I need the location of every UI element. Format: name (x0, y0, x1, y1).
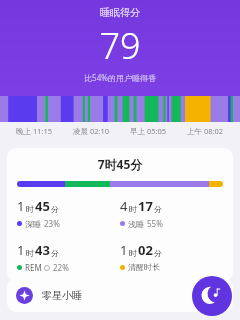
button[interactable]: 零星小睡 (7, 278, 233, 312)
staticText: 43 (35, 241, 50, 259)
staticText: 时 (129, 248, 137, 258)
staticText: 时 (129, 204, 137, 214)
staticText: 0次 (209, 289, 224, 301)
staticText: 上午 08:02 (187, 126, 224, 136)
staticText: 分 (51, 204, 59, 214)
staticText: 1 (17, 197, 25, 215)
staticText: 分 (154, 204, 162, 214)
staticText: 23% (44, 218, 60, 229)
staticText: 分 (51, 248, 59, 258)
staticText: 早上 05:05 (130, 126, 167, 136)
staticText: 45 (35, 197, 50, 215)
staticText: 比54%的用户睡得香 (84, 72, 156, 83)
staticText: 1 (17, 241, 25, 259)
staticText: 时 (26, 204, 34, 214)
staticText: 时 (26, 248, 34, 258)
staticText: 浅睡 (128, 219, 144, 229)
staticText: 79 (99, 21, 141, 70)
staticText: REM (25, 262, 42, 273)
staticText: 晚上 11:15 (16, 126, 53, 136)
staticText: 4 (120, 197, 128, 215)
staticText: 22% (53, 262, 69, 273)
staticText: 零星小睡 (42, 289, 82, 302)
button[interactable]: Sleep sounds (192, 276, 232, 316)
button[interactable]: 7时45分 (7, 148, 233, 281)
staticText: 55% (147, 218, 163, 229)
staticText: 17 (138, 197, 153, 215)
staticText: 分 (154, 248, 162, 258)
staticText: 睡眠得分 (100, 6, 140, 19)
staticText: 深睡 (25, 219, 41, 229)
staticText: 清醒时长 (128, 262, 160, 272)
staticText: 7时45分 (17, 156, 223, 172)
staticText: 1 (120, 241, 128, 259)
staticText: 02 (138, 241, 153, 259)
staticText: 凌晨 02:10 (73, 126, 110, 136)
